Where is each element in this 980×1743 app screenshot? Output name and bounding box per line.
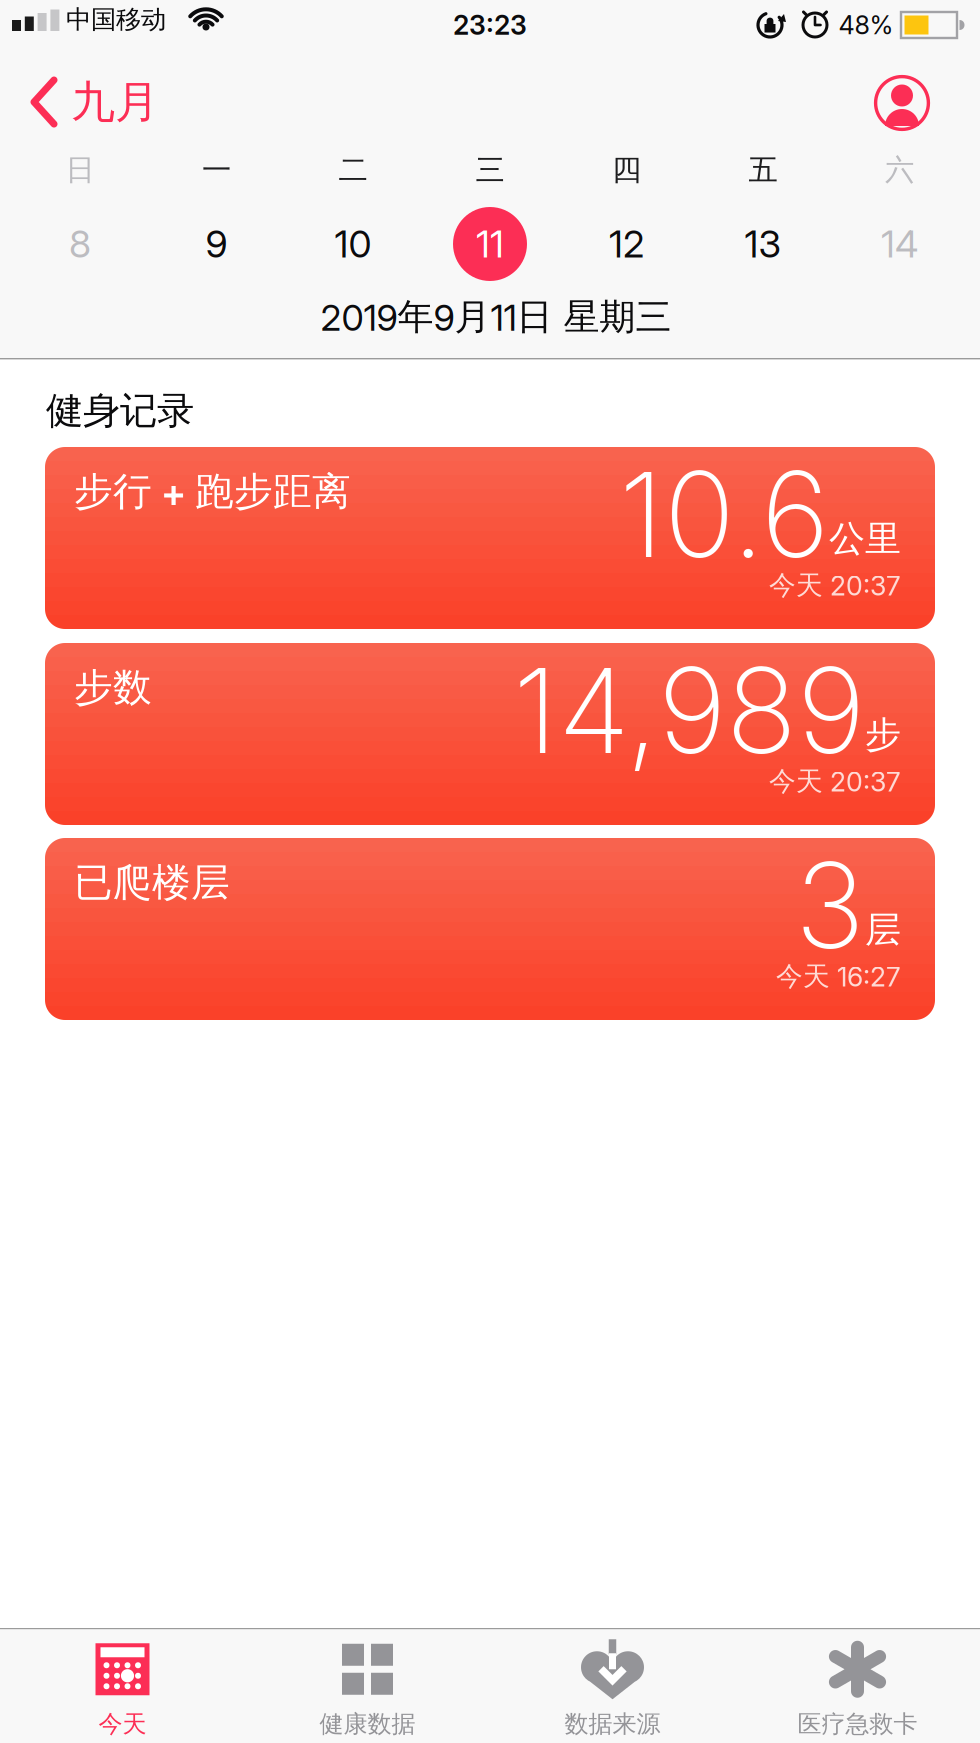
- button[interactable]: 医疗急救卡: [797, 1642, 917, 1739]
- staticText: 医疗急救卡: [797, 1709, 917, 1739]
- staticText: 12: [609, 222, 644, 266]
- staticText: 今天 16:27: [776, 960, 901, 993]
- staticText: 23:23: [453, 9, 527, 41]
- button[interactable]: 步行 + 跑步距离: [45, 447, 935, 629]
- button[interactable]: 今天: [90, 1642, 154, 1739]
- button[interactable]: 九月: [31, 75, 159, 129]
- staticText: 10.6公里: [619, 445, 901, 583]
- staticText: 五: [748, 152, 777, 188]
- staticText: 13: [744, 222, 781, 266]
- staticText: 四: [612, 152, 641, 188]
- staticText: 3层: [795, 836, 901, 974]
- staticText: 步数: [74, 664, 152, 711]
- button[interactable]: 健康数据: [319, 1642, 415, 1739]
- staticText: 11: [476, 222, 504, 266]
- button[interactable]: 13: [726, 207, 800, 281]
- staticText: 一: [202, 152, 231, 188]
- staticText: 今天 20:37: [769, 765, 901, 798]
- button[interactable]: 12: [589, 207, 663, 281]
- staticText: 14,989步: [513, 641, 901, 779]
- staticText: 健康数据: [319, 1709, 415, 1739]
- button[interactable]: 8: [43, 207, 117, 281]
- button[interactable]: 步数: [45, 643, 935, 825]
- staticText: 14: [881, 222, 918, 266]
- staticText: 六: [885, 152, 914, 188]
- staticText: 48%: [838, 10, 893, 40]
- staticText: 今天 20:37: [769, 569, 901, 602]
- button[interactable]: 已爬楼层: [45, 838, 935, 1020]
- staticText: 步行 + 跑步距离: [74, 468, 351, 515]
- staticText: 今天: [98, 1709, 146, 1739]
- button[interactable]: 9: [179, 207, 253, 281]
- staticText: 数据来源: [564, 1709, 660, 1739]
- staticText: 9: [205, 222, 227, 266]
- staticText: 10: [334, 222, 371, 266]
- staticText: 三: [475, 152, 504, 188]
- staticText: 8: [69, 222, 91, 266]
- staticText: 已爬楼层: [74, 859, 230, 906]
- staticText: 日: [65, 152, 94, 188]
- staticText: 2019年9月11日 星期三: [320, 295, 671, 339]
- button[interactable]: 数据来源: [564, 1642, 660, 1739]
- button[interactable]: 10: [316, 207, 390, 281]
- staticText: 九月: [71, 75, 159, 129]
- staticText: 健身记录: [46, 388, 194, 434]
- button[interactable]: 11: [453, 207, 527, 281]
- staticText: 二: [338, 152, 367, 188]
- staticText: 中国移动: [66, 4, 166, 35]
- button[interactable]: [873, 74, 931, 132]
- button[interactable]: 14: [862, 207, 936, 281]
